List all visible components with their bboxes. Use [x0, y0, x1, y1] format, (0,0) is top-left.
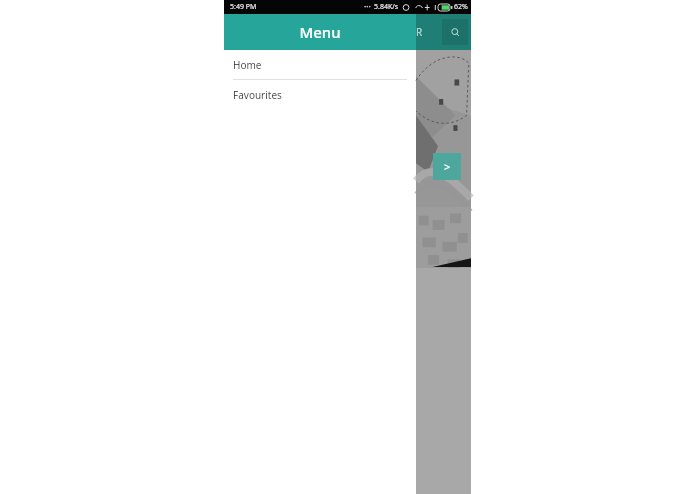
button[interactable]: Next	[433, 153, 461, 180]
staticText: 5.84K/s	[374, 2, 399, 12]
staticText: Favourites	[233, 88, 282, 102]
staticText: •••	[364, 3, 371, 11]
staticText: 62%	[454, 2, 468, 12]
staticText: Menu	[299, 22, 341, 42]
button[interactable]: Favourites	[224, 80, 416, 109]
staticText: 5:49 PM	[230, 2, 257, 12]
staticText: R	[416, 25, 423, 39]
button[interactable]: Home	[224, 50, 416, 79]
button[interactable]: Search	[442, 19, 468, 45]
staticText: >	[444, 159, 451, 174]
staticText: Home	[233, 58, 262, 72]
